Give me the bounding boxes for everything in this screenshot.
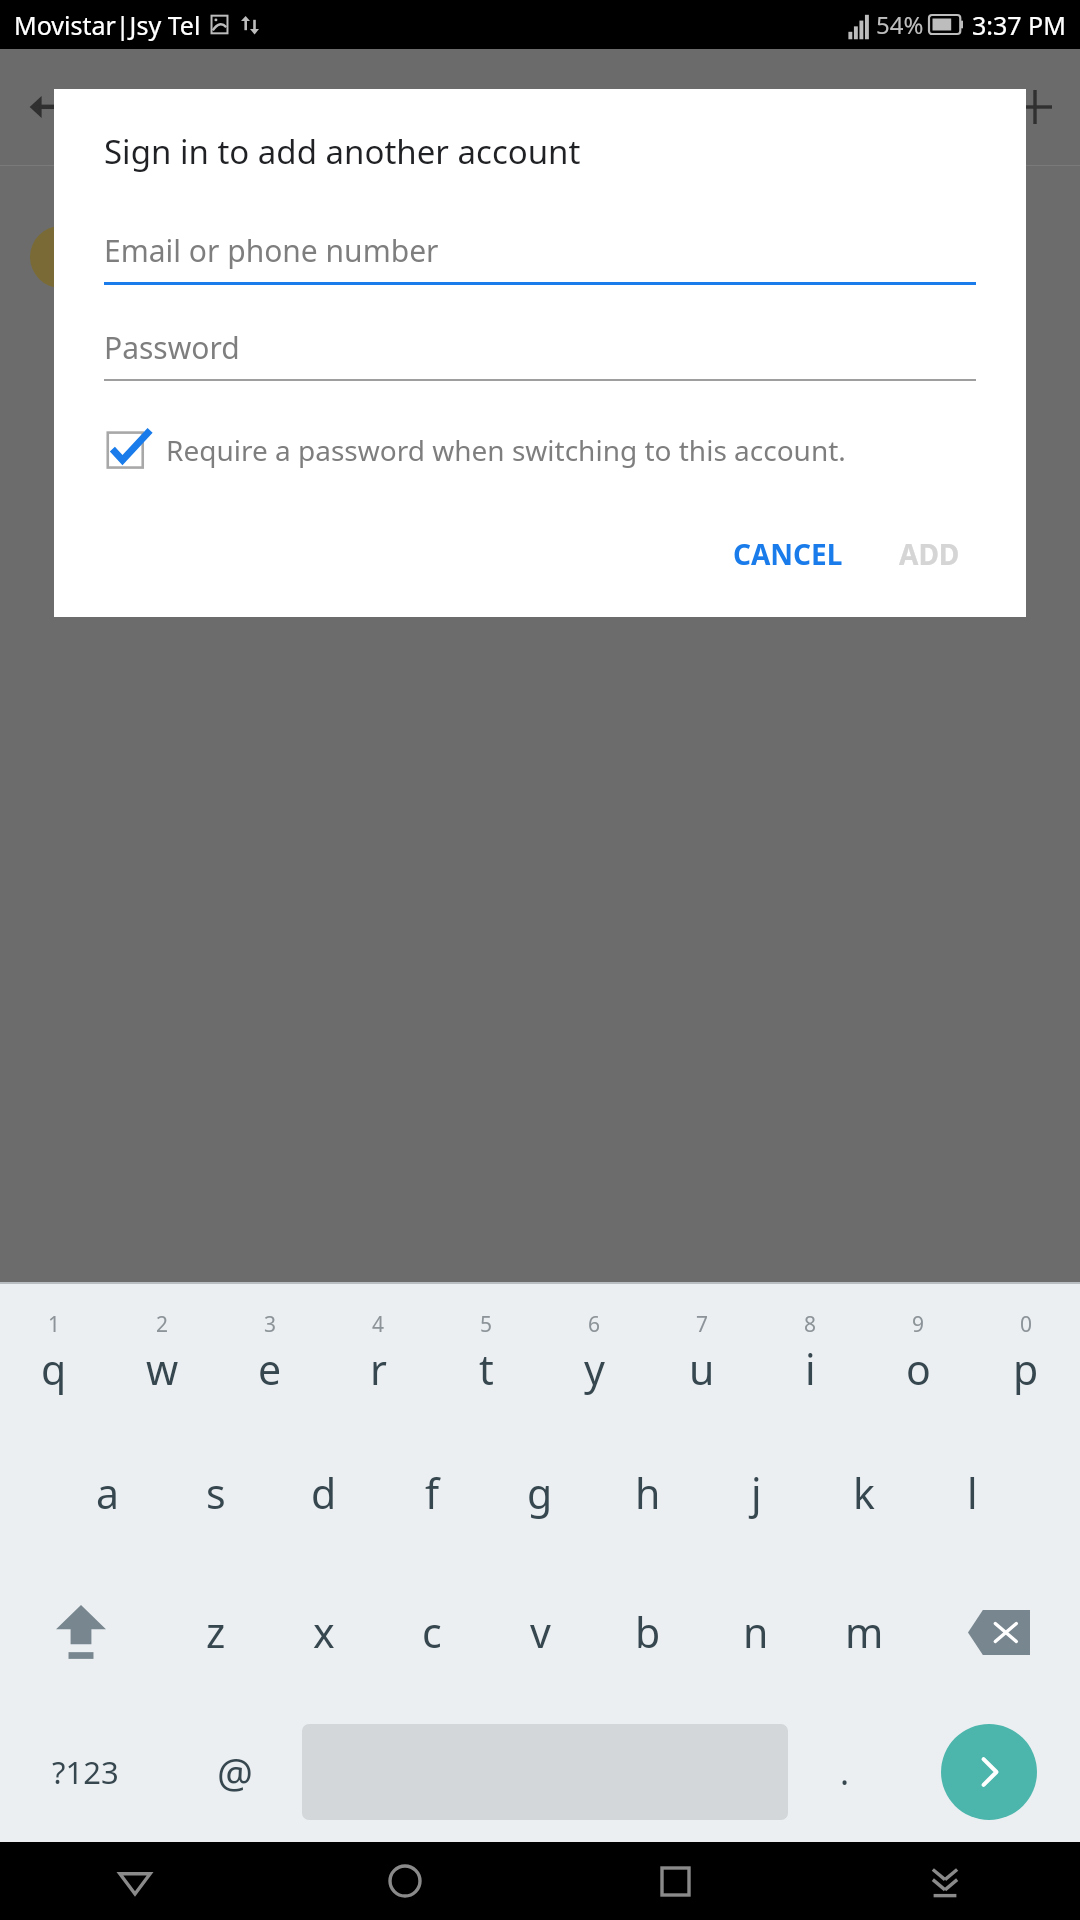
button[interactable]: Backspace <box>918 1562 1080 1702</box>
staticText: 9 <box>912 1310 925 1339</box>
staticText: Require a password when switching to thi… <box>166 431 846 469</box>
button[interactable]: 3 <box>216 1284 324 1423</box>
staticText: a <box>96 1465 120 1521</box>
button[interactable]: g <box>486 1423 594 1562</box>
staticText: 6 <box>588 1310 601 1339</box>
button[interactable]: 2 <box>108 1284 216 1423</box>
staticText: e <box>258 1341 282 1397</box>
staticText: Sign in to add another account <box>104 129 581 174</box>
button[interactable]: f <box>378 1423 486 1562</box>
button[interactable]: CANCEL <box>717 523 859 585</box>
staticText: . <box>840 1749 850 1795</box>
staticText: Movistar|Jsy Tel <box>14 8 201 42</box>
staticText: b <box>635 1604 661 1660</box>
button[interactable]: z <box>162 1562 270 1702</box>
button[interactable]: b <box>594 1562 702 1702</box>
button[interactable]: 0 <box>972 1284 1080 1423</box>
button[interactable]: 6 <box>540 1284 648 1423</box>
button[interactable]: Password <box>104 321 976 381</box>
staticText: 2 <box>156 1310 169 1339</box>
button[interactable]: Back <box>0 1842 270 1920</box>
staticText: h <box>635 1465 661 1521</box>
button[interactable]: 4 <box>324 1284 432 1423</box>
staticText: 3 <box>264 1310 277 1339</box>
staticText: u <box>689 1341 715 1397</box>
staticText: r <box>370 1341 387 1397</box>
button[interactable]: Shift <box>0 1562 162 1702</box>
staticText: p <box>1013 1341 1039 1397</box>
staticText: v <box>530 1604 551 1660</box>
button[interactable]: Require a password when switching to thi… <box>104 427 976 475</box>
button[interactable]: 9 <box>864 1284 972 1423</box>
button[interactable]: n <box>702 1562 810 1702</box>
staticText: Email or phone number <box>104 230 439 271</box>
staticText: 0 <box>1020 1310 1033 1339</box>
staticText: @ <box>217 1745 253 1799</box>
button[interactable]: a <box>54 1423 162 1562</box>
button[interactable]: 5 <box>432 1284 540 1423</box>
staticText: j <box>751 1465 762 1521</box>
button[interactable]: @ <box>171 1702 299 1842</box>
button[interactable]: Home <box>270 1842 540 1920</box>
staticText: y <box>584 1341 605 1397</box>
button[interactable]: s <box>162 1423 270 1562</box>
staticText: f <box>425 1465 440 1521</box>
button[interactable]: c <box>378 1562 486 1702</box>
staticText: q <box>41 1341 67 1397</box>
staticText: x <box>313 1604 335 1660</box>
button[interactable]: j <box>702 1423 810 1562</box>
staticText: k <box>853 1465 875 1521</box>
staticText: 5 <box>480 1310 493 1339</box>
button[interactable]: ADD <box>883 523 976 585</box>
button[interactable]: . <box>791 1702 898 1842</box>
button[interactable]: Recent apps <box>540 1842 810 1920</box>
staticText: CANCEL <box>733 535 843 573</box>
staticText: s <box>206 1465 226 1521</box>
button[interactable]: h <box>594 1423 702 1562</box>
staticText: d <box>311 1465 337 1521</box>
staticText: Password <box>104 327 240 368</box>
staticText: ?123 <box>52 1751 119 1793</box>
staticText: 8 <box>804 1310 817 1339</box>
button[interactable]: d <box>270 1423 378 1562</box>
staticText: o <box>906 1341 931 1397</box>
button[interactable]: k <box>810 1423 918 1562</box>
staticText: t <box>479 1341 494 1397</box>
button[interactable]: m <box>810 1562 918 1702</box>
button[interactable]: x <box>270 1562 378 1702</box>
button[interactable]: Hide keyboard <box>810 1842 1080 1920</box>
button[interactable]: ?123 <box>0 1702 171 1842</box>
staticText: c <box>422 1604 442 1660</box>
button[interactable]: Email or phone number <box>104 224 976 285</box>
button[interactable]: 1 <box>0 1284 108 1423</box>
staticText: 54% <box>876 8 924 41</box>
button[interactable]: v <box>486 1562 594 1702</box>
button[interactable]: 8 <box>756 1284 864 1423</box>
staticText: 4 <box>372 1310 385 1339</box>
staticText: g <box>527 1465 553 1521</box>
staticText: 1 <box>48 1310 61 1339</box>
staticText: 3:37 PM <box>972 8 1066 42</box>
button[interactable]: l <box>918 1423 1026 1562</box>
staticText: i <box>805 1341 816 1397</box>
staticText: l <box>967 1465 978 1521</box>
staticText: w <box>146 1341 179 1397</box>
staticText: m <box>845 1604 884 1660</box>
button[interactable]: Enter <box>941 1724 1037 1820</box>
staticText: ADD <box>899 535 960 573</box>
staticText: n <box>743 1604 769 1660</box>
staticText: z <box>206 1604 226 1660</box>
staticText: 7 <box>696 1310 709 1339</box>
button[interactable]: 7 <box>648 1284 756 1423</box>
